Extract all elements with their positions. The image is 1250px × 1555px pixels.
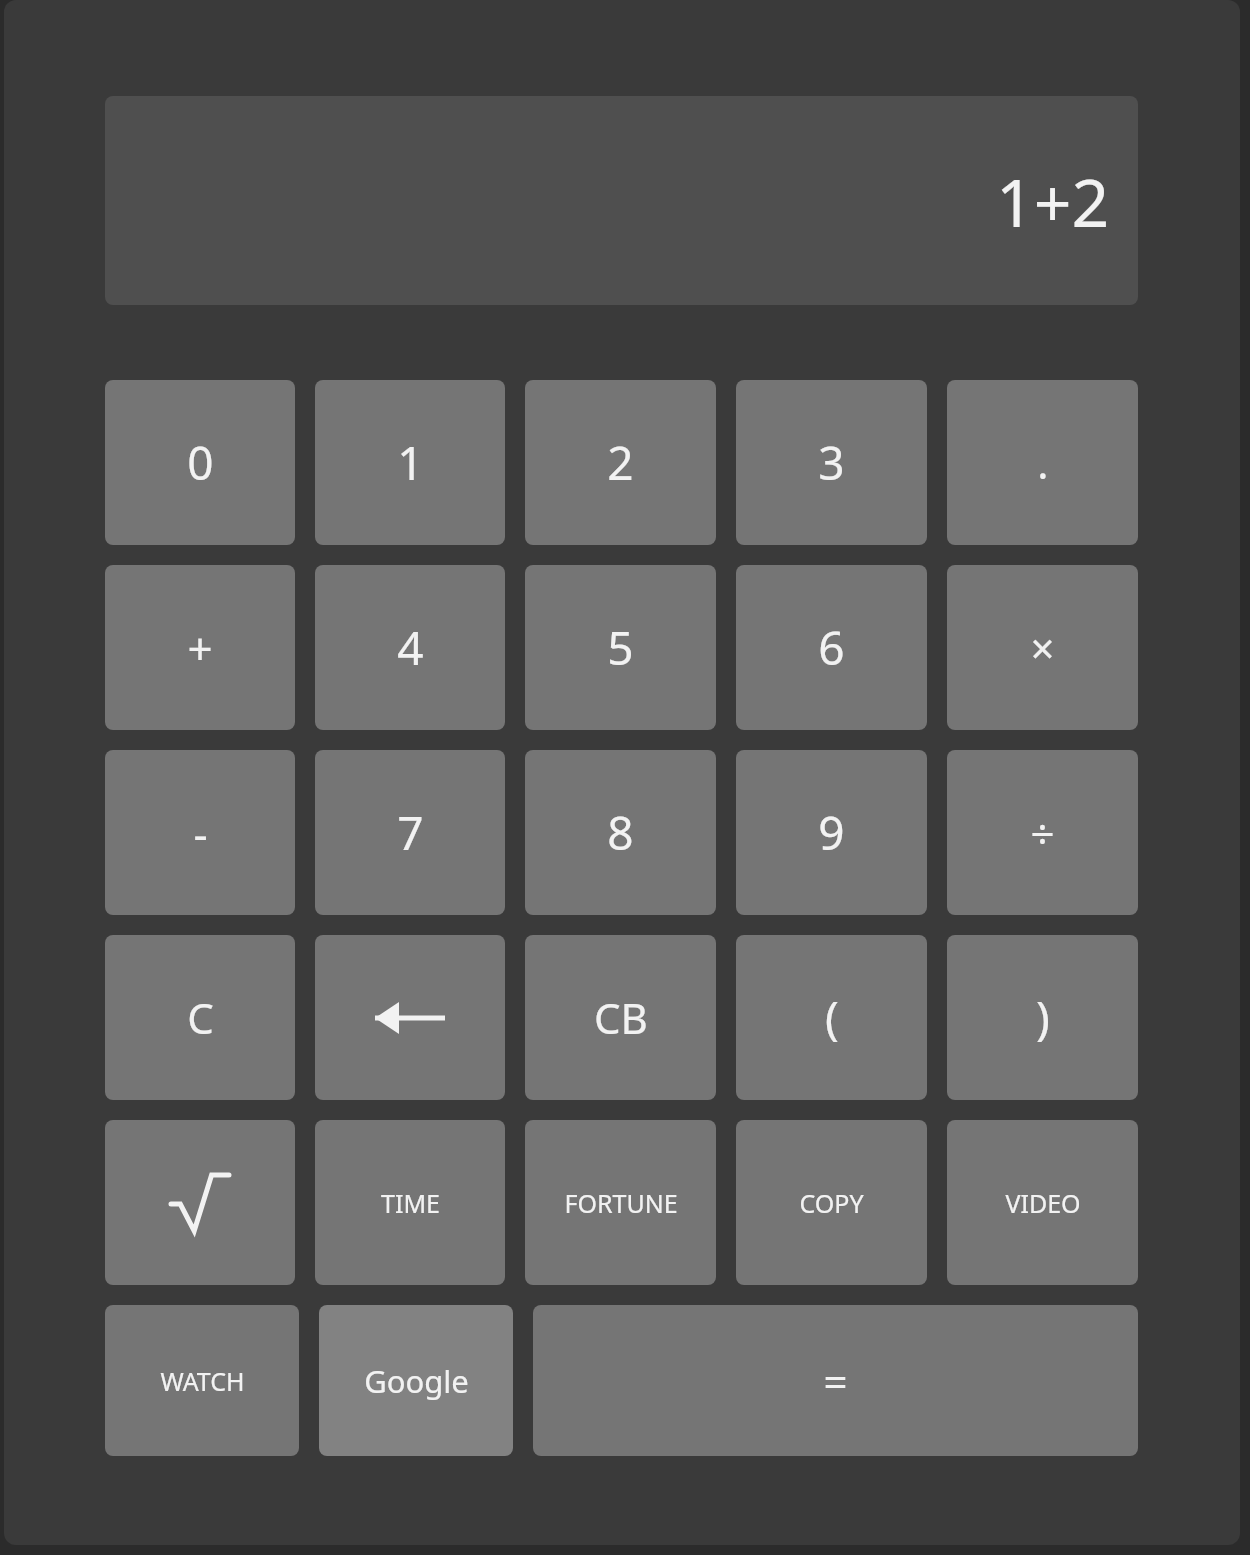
button[interactable]: CB: [525, 935, 716, 1100]
staticText: 2: [607, 431, 634, 494]
staticText: Google: [364, 1360, 469, 1402]
button[interactable]: =: [533, 1305, 1138, 1456]
staticText: ): [1036, 986, 1050, 1049]
button[interactable]: WATCH: [105, 1305, 299, 1456]
staticText: =: [823, 1352, 848, 1409]
button[interactable]: (: [736, 935, 927, 1100]
button[interactable]: ): [947, 935, 1138, 1100]
staticText: 7: [397, 801, 424, 864]
staticText: C: [187, 989, 214, 1046]
staticText: TIME: [381, 1186, 440, 1220]
button[interactable]: 1+2: [105, 96, 1138, 305]
button[interactable]: FORTUNE: [525, 1120, 716, 1285]
button[interactable]: ×: [947, 565, 1138, 730]
button[interactable]: 9: [736, 750, 927, 915]
staticText: COPY: [799, 1186, 864, 1220]
staticText: +: [187, 618, 213, 678]
staticText: 0: [187, 431, 214, 494]
staticText: .: [1037, 434, 1049, 491]
button[interactable]: 4: [315, 565, 505, 730]
button[interactable]: 5: [525, 565, 716, 730]
button[interactable]: Square root: [105, 1120, 295, 1285]
button[interactable]: C: [105, 935, 295, 1100]
staticText: WATCH: [160, 1364, 245, 1398]
staticText: 9: [818, 801, 845, 864]
staticText: ÷: [1030, 804, 1055, 861]
button[interactable]: TIME: [315, 1120, 505, 1285]
button[interactable]: COPY: [736, 1120, 927, 1285]
staticText: -: [193, 803, 208, 863]
staticText: FORTUNE: [564, 1186, 678, 1220]
button[interactable]: Backspace: [315, 935, 505, 1100]
staticText: 6: [818, 616, 845, 679]
button[interactable]: ÷: [947, 750, 1138, 915]
button[interactable]: VIDEO: [947, 1120, 1138, 1285]
staticText: 8: [607, 801, 634, 864]
button[interactable]: 8: [525, 750, 716, 915]
staticText: (: [825, 986, 839, 1049]
button[interactable]: -: [105, 750, 295, 915]
staticText: 3: [818, 431, 845, 494]
button[interactable]: 2: [525, 380, 716, 545]
staticText: 4: [397, 616, 424, 679]
staticText: ×: [1030, 619, 1055, 676]
button[interactable]: 3: [736, 380, 927, 545]
button[interactable]: .: [947, 380, 1138, 545]
staticText: 1+2: [996, 156, 1110, 246]
button[interactable]: 7: [315, 750, 505, 915]
button[interactable]: 1: [315, 380, 505, 545]
staticText: VIDEO: [1005, 1186, 1081, 1220]
button[interactable]: +: [105, 565, 295, 730]
staticText: 1: [397, 431, 424, 494]
button[interactable]: Google: [319, 1305, 513, 1456]
staticText: CB: [594, 989, 648, 1046]
button[interactable]: 0: [105, 380, 295, 545]
button[interactable]: 6: [736, 565, 927, 730]
staticText: 5: [607, 616, 634, 679]
